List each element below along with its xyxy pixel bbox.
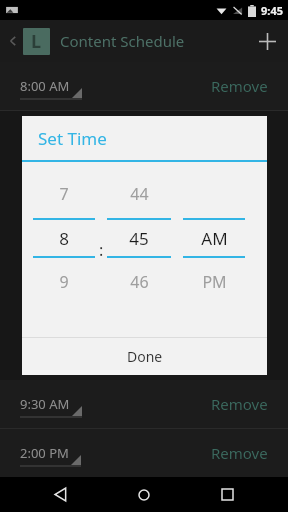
staticText: 8:00 AM: [20, 77, 70, 95]
button[interactable]: Remove: [211, 443, 268, 463]
button[interactable]: Remove: [211, 394, 268, 414]
button[interactable]: 44: [107, 178, 171, 210]
button[interactable]: Home: [122, 477, 166, 512]
staticText: Content Schedule: [60, 31, 185, 51]
staticText: 44: [130, 183, 149, 205]
button[interactable]: Back: [39, 477, 83, 512]
staticText: 46: [130, 271, 149, 293]
button[interactable]: 7: [33, 178, 95, 210]
button[interactable]: 45: [107, 220, 171, 256]
staticText: Remove: [211, 76, 268, 96]
staticText: 8: [59, 227, 69, 250]
staticText: 45: [129, 227, 149, 250]
button[interactable]: 46: [107, 266, 171, 298]
staticText: Remove: [211, 394, 268, 414]
button[interactable]: Remove: [211, 76, 268, 96]
staticText: 2:00 PM: [20, 444, 69, 462]
staticText: Remove: [211, 443, 268, 463]
button[interactable]: 2:00 PM: [0, 429, 288, 477]
staticText: 9:30 AM: [20, 395, 70, 413]
button[interactable]: 8: [33, 220, 95, 256]
staticText: 9:45: [261, 3, 283, 18]
staticText: Set Time: [38, 127, 107, 150]
button[interactable]: AM: [183, 220, 245, 256]
button[interactable]: 9: [33, 266, 95, 298]
button[interactable]: PM: [183, 266, 245, 298]
staticText: L: [31, 29, 42, 54]
staticText: 9: [59, 271, 69, 293]
button[interactable]: Add: [246, 20, 288, 62]
staticText: 7: [59, 183, 69, 205]
button[interactable]: Recents: [205, 477, 249, 512]
button[interactable]: 8:00 AM: [0, 62, 288, 110]
button[interactable]: Done: [22, 338, 267, 375]
button[interactable]: 9:30 AM: [0, 380, 288, 428]
staticText: PM: [202, 271, 227, 293]
staticText: AM: [201, 227, 228, 250]
button[interactable]: Navigate up: [3, 31, 23, 51]
staticText: :: [99, 239, 104, 261]
staticText: Done: [127, 347, 163, 366]
